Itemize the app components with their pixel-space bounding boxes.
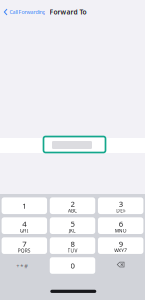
staticText: TUV [67,247,77,254]
button[interactable]: 7 [2,237,47,254]
button[interactable]: 4 [2,217,47,234]
staticText: 8 [70,238,74,249]
staticText: ABC [68,207,77,214]
button[interactable]: 0 [50,257,95,274]
staticText: 1 [22,200,26,211]
staticText: WXYZ [114,247,127,254]
staticText: 6 [119,218,123,229]
staticText: + * # [16,262,28,270]
staticText: MNO [115,227,127,234]
staticText: 7 [22,238,26,249]
button[interactable]: 9 [98,237,143,254]
button[interactable]: 6 [98,217,143,234]
button[interactable]: 3 [98,197,143,214]
button[interactable]: 2 [50,197,95,214]
staticText: PQRS [18,247,31,254]
staticText: JKL [69,227,76,234]
staticText: DEF [116,207,125,214]
button[interactable]: 8 [50,237,95,254]
button[interactable]: + * # [2,257,47,274]
staticText: 2 [70,198,74,209]
button[interactable]: 1 [2,197,47,214]
staticText: Call Forwarding [9,8,45,16]
staticText: 0 [70,260,74,271]
staticText: 9 [119,238,123,249]
button[interactable]: Delete [98,257,143,274]
staticText: GHI [20,227,29,234]
staticText: 3 [119,198,123,209]
button[interactable]: 5 [50,217,95,234]
staticText: 4 [22,218,26,229]
button[interactable]: Call Forwarding [0,4,45,20]
staticText: 5 [70,218,74,229]
staticText: Forward To [49,8,86,16]
